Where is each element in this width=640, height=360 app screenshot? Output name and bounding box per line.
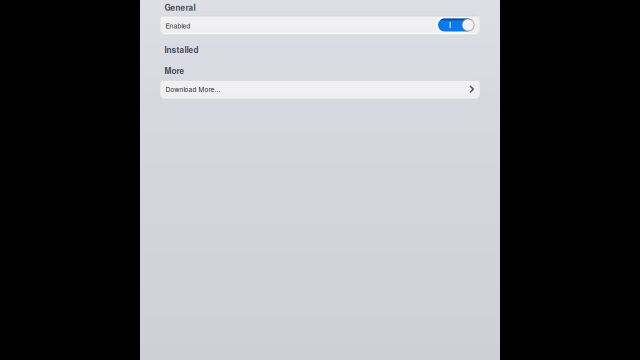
staticText: Installed bbox=[164, 44, 198, 55]
button[interactable]: Download More... bbox=[160, 80, 480, 99]
staticText: More bbox=[164, 65, 184, 76]
staticText: General bbox=[164, 1, 195, 13]
button[interactable]: Enabled bbox=[160, 15, 480, 35]
staticText: Enabled bbox=[165, 21, 190, 30]
staticText: Download More... bbox=[165, 84, 220, 94]
